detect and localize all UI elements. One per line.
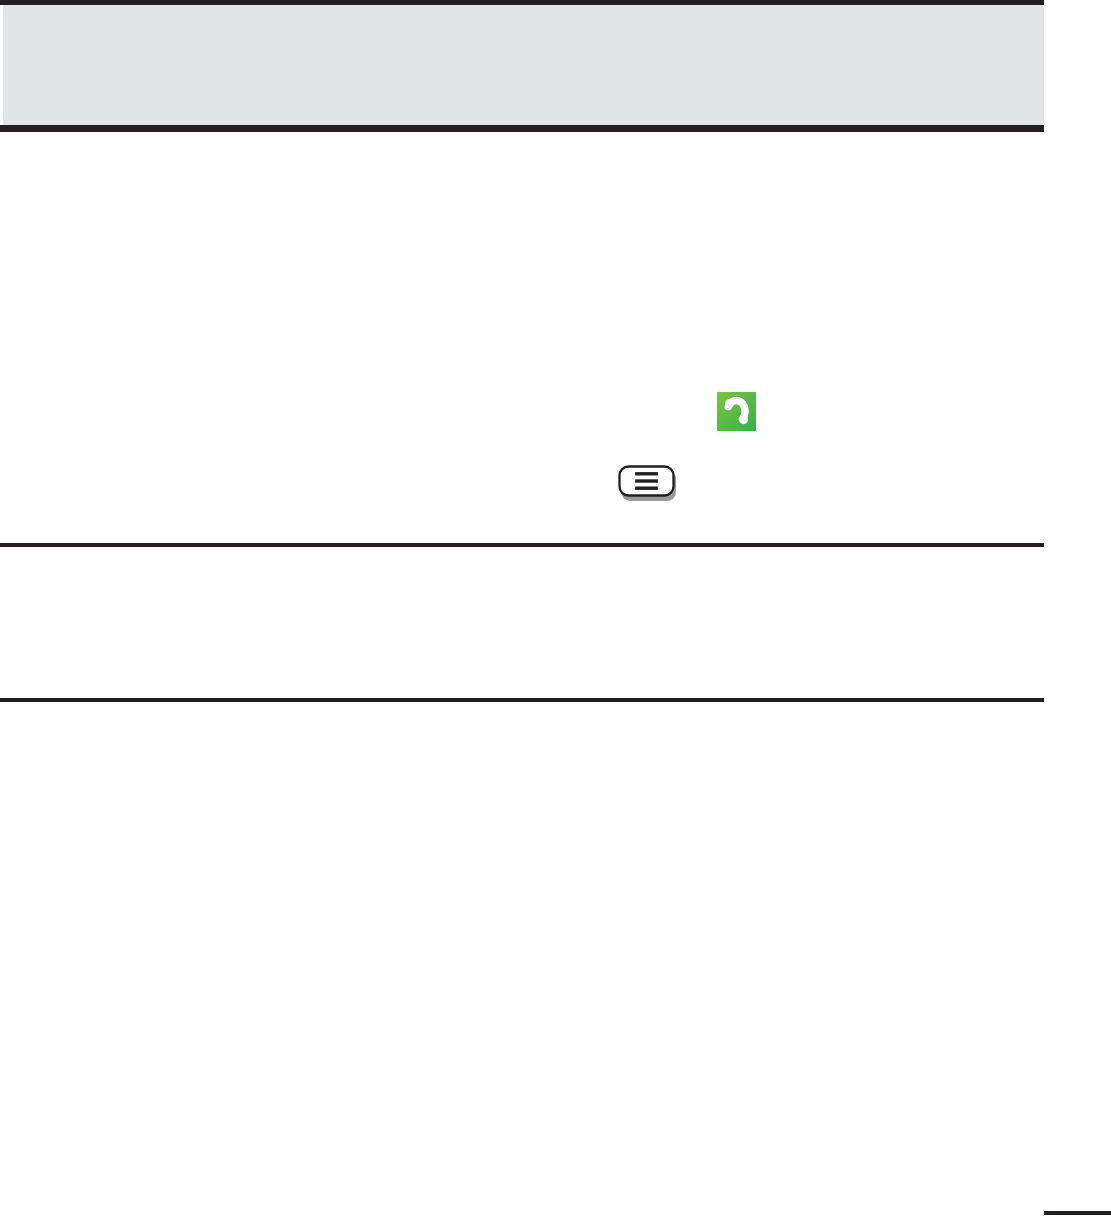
button[interactable]: Menu — [618, 465, 678, 502]
button[interactable]: Call — [717, 392, 756, 431]
